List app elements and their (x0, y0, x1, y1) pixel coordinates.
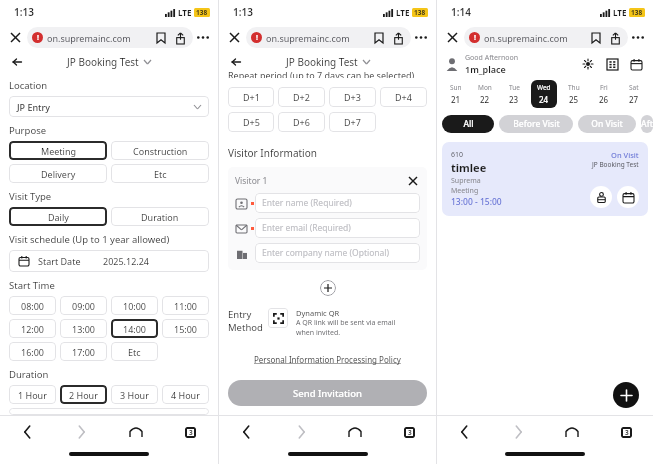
button[interactable]: Bookmark (371, 30, 387, 46)
button[interactable]: 15:00 (162, 319, 209, 338)
button[interactable]: Duration (111, 207, 209, 226)
button[interactable]: Etc (111, 164, 209, 183)
button[interactable]: Building (603, 55, 621, 73)
button[interactable]: 13:00 (60, 319, 107, 338)
staticText: 16:00 (21, 346, 45, 358)
button[interactable]: 12:00 (9, 319, 56, 338)
button[interactable]: 14:00 (111, 319, 158, 338)
staticText: Enter email (Required) (262, 222, 351, 234)
button[interactable]: Sun (443, 80, 469, 108)
button[interactable]: Enter company name (Optional) (255, 243, 420, 263)
button[interactable]: D+3 (329, 87, 376, 107)
button[interactable]: JP Entry (9, 96, 209, 117)
button[interactable]: Wed (531, 80, 557, 108)
staticText: Etc (128, 346, 141, 358)
button[interactable]: Remove visitor (406, 174, 420, 188)
button[interactable]: 4 Hour (162, 385, 209, 404)
button[interactable]: After (641, 115, 653, 133)
button[interactable]: Send Invitation (228, 380, 427, 406)
button[interactable]: On Visit (578, 115, 636, 133)
button[interactable]: Tabs (599, 416, 653, 448)
button[interactable]: Add visitor (320, 280, 336, 296)
button[interactable]: Back (437, 416, 491, 448)
button[interactable]: Tabs (382, 416, 436, 448)
button[interactable]: Meeting (9, 141, 107, 160)
button[interactable]: 1 Hour (9, 385, 56, 404)
staticText: LTE (396, 7, 410, 18)
button[interactable]: Forward (54, 416, 108, 448)
staticText: D+3 (344, 91, 361, 103)
staticText: 26 (599, 94, 609, 105)
button[interactable]: Daily (9, 207, 107, 226)
button[interactable]: More options (193, 27, 213, 47)
button[interactable]: D+6 (278, 112, 325, 132)
staticText: on.supremainc.com (266, 32, 350, 44)
button[interactable]: Construction (111, 141, 209, 160)
button[interactable]: More options (628, 27, 648, 47)
button[interactable]: Forward (491, 416, 545, 448)
button[interactable]: Back (219, 416, 274, 448)
button[interactable]: Home (108, 416, 163, 448)
staticText: D+6 (293, 116, 310, 128)
button[interactable]: Tue (501, 80, 527, 108)
button[interactable]: All (442, 115, 494, 133)
button[interactable]: Home (328, 416, 382, 448)
button[interactable]: D+7 (329, 112, 376, 132)
button[interactable]: 610 (442, 142, 648, 216)
staticText: Enter name (Required) (262, 197, 352, 209)
button[interactable]: Visitor pass (590, 186, 612, 208)
button[interactable]: D+4 (380, 87, 427, 107)
button[interactable]: Brightness (579, 55, 597, 73)
button[interactable]: Calendar (627, 55, 645, 73)
button[interactable]: 2 Hour (60, 385, 107, 404)
button[interactable]: Home (545, 416, 599, 448)
button[interactable]: Tabs (163, 416, 218, 448)
button[interactable]: Bookmark (153, 30, 169, 46)
button[interactable]: ! (246, 27, 411, 48)
staticText: 1:14 (451, 5, 471, 19)
button[interactable]: Delivery (9, 164, 107, 183)
button[interactable]: Enter name (Required) (255, 193, 420, 213)
button[interactable]: Close (5, 27, 25, 47)
button[interactable]: Sat (621, 80, 647, 108)
button[interactable]: Bookmark (588, 30, 604, 46)
button[interactable]: Close (442, 27, 462, 47)
button[interactable]: Thu (561, 80, 587, 108)
button[interactable]: 08:00 (9, 296, 56, 315)
button[interactable]: Mon (472, 80, 498, 108)
button[interactable]: Enter email (Required) (255, 218, 420, 238)
button[interactable]: Schedule (617, 186, 639, 208)
button[interactable]: Back (0, 416, 54, 448)
button[interactable]: Close (224, 27, 244, 47)
button[interactable]: Start Date (9, 250, 209, 272)
button[interactable]: Share (172, 30, 188, 46)
button[interactable]: Back (8, 53, 26, 71)
button[interactable]: Etc (111, 342, 158, 361)
button[interactable]: 17:00 (60, 342, 107, 361)
button[interactable]: Share (390, 30, 406, 46)
button[interactable]: Dynamic QR (268, 308, 288, 328)
button[interactable]: ! (27, 27, 193, 48)
staticText: Dynamic QR (296, 308, 340, 318)
button[interactable]: 11:00 (162, 296, 209, 315)
button[interactable]: D+2 (278, 87, 325, 107)
button[interactable]: 16:00 (9, 342, 56, 361)
button[interactable]: Share (607, 30, 623, 46)
button[interactable]: Fri (591, 80, 617, 108)
button[interactable]: D+5 (228, 112, 274, 132)
staticText: Purpose (9, 124, 47, 137)
button[interactable]: 3 Hour (111, 385, 158, 404)
button[interactable]: Add booking (613, 382, 639, 408)
button[interactable]: Personal Information Processing Policy (254, 354, 401, 365)
button[interactable]: ! (464, 27, 628, 48)
staticText: 27 (629, 94, 639, 105)
button[interactable]: D+1 (228, 87, 274, 107)
button[interactable]: Before Visit (499, 115, 573, 133)
button[interactable]: More options (411, 27, 431, 47)
button[interactable]: 09:00 (60, 296, 107, 315)
button[interactable]: 10:00 (111, 296, 158, 315)
staticText: 3 (189, 428, 193, 437)
button[interactable]: Forward (274, 416, 328, 448)
button[interactable]: Back (227, 53, 245, 71)
staticText: A QR link will be sent via email (296, 318, 396, 328)
